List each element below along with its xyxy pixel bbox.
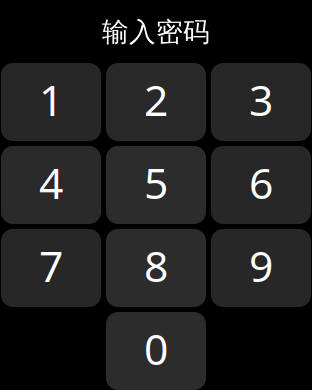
button[interactable]: 7 <box>1 229 101 307</box>
button[interactable]: 1 <box>1 63 101 141</box>
staticText: 5 <box>144 154 168 211</box>
button[interactable]: 4 <box>1 146 101 224</box>
button[interactable]: 0 <box>106 312 206 390</box>
button[interactable]: 6 <box>211 146 311 224</box>
staticText: 输入密码 <box>102 16 210 48</box>
staticText: 9 <box>249 237 273 294</box>
button[interactable]: 9 <box>211 229 311 307</box>
button[interactable]: 5 <box>106 146 206 224</box>
button[interactable]: 3 <box>211 63 311 141</box>
staticText: 3 <box>249 71 273 128</box>
staticText: 1 <box>39 71 63 128</box>
staticText: 8 <box>144 237 168 294</box>
button[interactable]: 2 <box>106 63 206 141</box>
button[interactable]: 8 <box>106 229 206 307</box>
staticText: 4 <box>39 154 63 211</box>
staticText: 2 <box>144 71 168 128</box>
staticText: 6 <box>249 154 273 211</box>
staticText: 0 <box>144 320 168 377</box>
staticText: 7 <box>39 237 63 294</box>
